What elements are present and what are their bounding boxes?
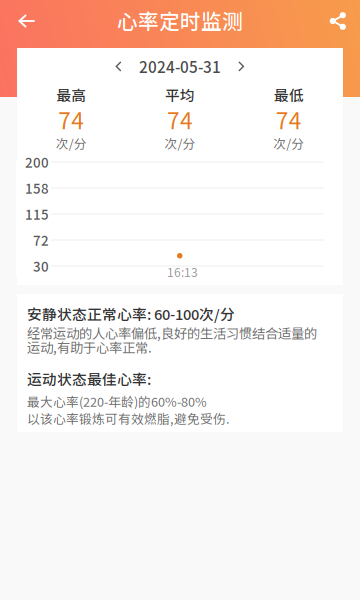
staticText: 200 <box>25 152 49 172</box>
staticText: 安静状态正常心率: 60-100次/分 <box>27 303 235 324</box>
staticText: 次/分 <box>273 134 304 152</box>
button[interactable]: Previous day <box>107 56 130 77</box>
staticText: 经常运动的人心率偏低,良好的生活习惯结合适量的运动,有助于心率正常. <box>27 323 317 357</box>
staticText: 次/分 <box>56 134 87 152</box>
button[interactable]: Back <box>0 0 54 42</box>
staticText: 16:13 <box>167 263 198 280</box>
staticText: 2024-05-31 <box>139 55 221 77</box>
staticText: 次/分 <box>164 134 195 152</box>
staticText: 74 <box>276 103 302 136</box>
staticText: 以该心率锻炼可有效燃脂,避免受伤. <box>27 409 230 427</box>
staticText: 最低 <box>274 84 304 105</box>
button[interactable]: Share <box>316 0 360 42</box>
staticText: 72 <box>33 230 49 250</box>
button[interactable]: Next day <box>230 56 253 77</box>
staticText: 最大心率(220-年龄)的60%-80% <box>27 392 207 410</box>
staticText: 心率定时监测 <box>117 5 243 35</box>
staticText: 115 <box>25 204 49 224</box>
staticText: 74 <box>167 103 193 136</box>
staticText: 运动状态最佳心率: <box>27 368 151 389</box>
staticText: 最高 <box>56 84 86 105</box>
staticText: 74 <box>58 103 84 136</box>
staticText: 158 <box>25 178 49 198</box>
staticText: 平均 <box>165 84 195 105</box>
staticText: 30 <box>33 256 49 276</box>
